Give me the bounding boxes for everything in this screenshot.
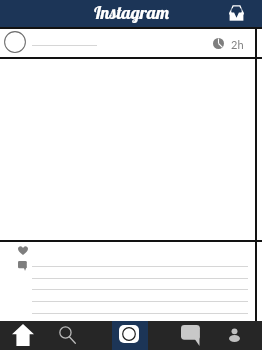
- button[interactable]: Home: [12, 324, 34, 346]
- staticText: 2h: [231, 38, 244, 51]
- button[interactable]: Comment: [18, 261, 28, 271]
- button[interactable]: Activity: [181, 325, 202, 346]
- staticText: Instagram: [93, 1, 170, 24]
- button[interactable]: Camera: [112, 321, 148, 350]
- button[interactable]: Like: [18, 246, 28, 255]
- button[interactable]: Profile photo: [4, 31, 26, 53]
- button[interactable]: Profile: [229, 328, 240, 342]
- button[interactable]: Direct inbox: [229, 5, 244, 21]
- button[interactable]: Search: [59, 326, 76, 344]
